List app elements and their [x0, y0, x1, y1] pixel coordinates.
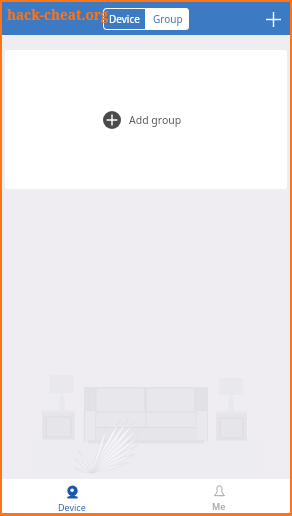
button[interactable]: Group — [146, 8, 189, 30]
staticText: hack-cheat.org — [7, 6, 109, 24]
button[interactable]: Device — [104, 9, 145, 29]
staticText: Me — [212, 500, 226, 512]
staticText: Device — [109, 12, 140, 26]
button[interactable]: Me — [146, 479, 290, 513]
staticText: Device — [58, 501, 86, 513]
staticText: Add group — [129, 113, 182, 127]
button[interactable]: Device — [2, 479, 146, 513]
button[interactable]: Add group — [5, 50, 287, 189]
button[interactable]: Add device — [256, 3, 290, 36]
staticText: Group — [153, 12, 183, 26]
